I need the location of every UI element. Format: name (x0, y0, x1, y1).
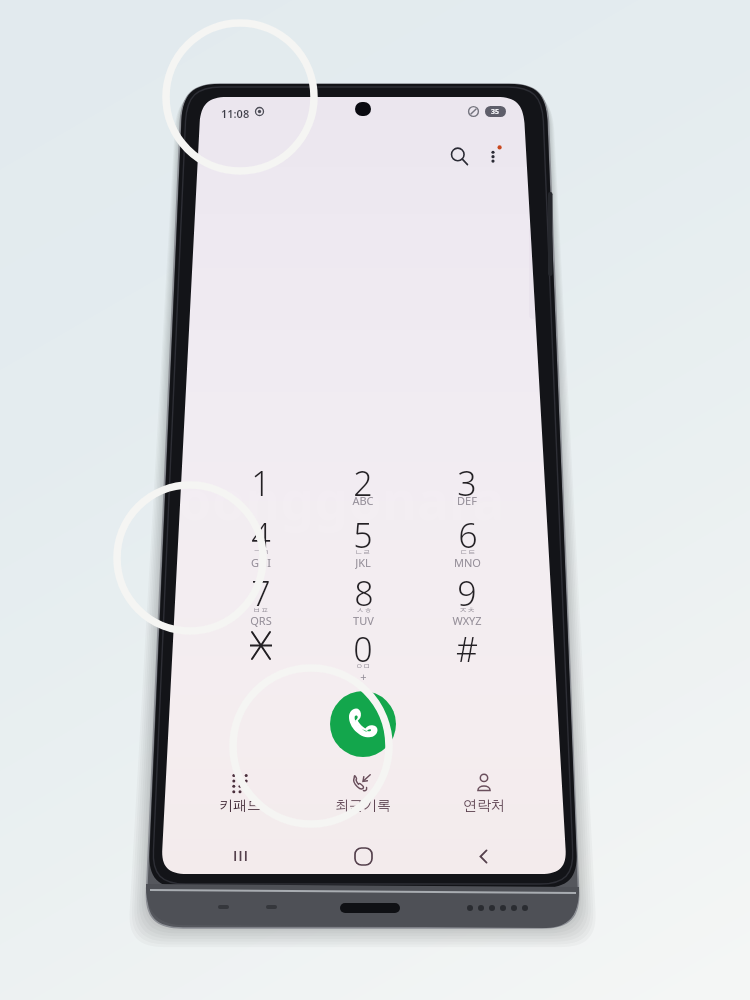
button[interactable]: Edge panel (529, 227, 537, 319)
button[interactable]: 6 (422, 512, 512, 582)
staticText: 8 (354, 570, 374, 616)
button[interactable]: 키패드 (192, 772, 288, 828)
button[interactable]: Search (441, 138, 477, 174)
staticText: 9 (457, 570, 477, 616)
button[interactable]: Home (345, 838, 381, 874)
staticText: 35 (491, 107, 500, 117)
staticText: GHI (251, 555, 271, 569)
button[interactable] (216, 626, 306, 696)
staticText: WXYZ (452, 613, 482, 627)
button[interactable]: 1 (216, 460, 306, 530)
staticText: ㄱㅋ (253, 547, 269, 557)
button[interactable]: 3 (422, 460, 512, 530)
button[interactable]: 9 (422, 570, 512, 640)
staticText: QRS (250, 613, 272, 627)
staticText: 4 (251, 512, 271, 558)
staticText: DEF (457, 493, 477, 508)
button[interactable]: 8 (318, 570, 408, 640)
button[interactable]: 2 (318, 460, 408, 530)
button[interactable]: 4 (216, 512, 306, 582)
staticText: 2 (353, 460, 373, 506)
staticText: joonggonara (162, 463, 505, 535)
staticText: ㄷㅌ (460, 547, 476, 557)
staticText: 5 (353, 512, 373, 558)
staticText: 6 (458, 512, 478, 558)
staticText: 0 (353, 626, 373, 672)
staticText: ㅂㅍ (253, 605, 269, 615)
staticText: TUV (353, 613, 374, 627)
button[interactable]: 연락처 (436, 772, 532, 828)
staticText: 1 (251, 460, 271, 506)
staticText: ABC (352, 493, 374, 508)
button[interactable]: 7 (216, 570, 306, 640)
button[interactable]: More options (475, 138, 511, 174)
staticText: 연락처 (463, 797, 505, 815)
button[interactable]: 0 (318, 626, 408, 696)
staticText: MNO (454, 555, 481, 569)
staticText: 최근기록 (335, 797, 391, 815)
staticText: ㅇㅁ (355, 661, 371, 671)
staticText: 7 (251, 570, 271, 616)
button[interactable]: Recents (222, 838, 258, 874)
staticText: JKL (355, 555, 371, 569)
staticText: 3 (457, 460, 477, 506)
staticText: ㅅㅎ (356, 605, 372, 615)
button[interactable]: 5 (318, 512, 408, 582)
staticText: ㄴㄹ (355, 547, 371, 557)
button[interactable]: 최근기록 (315, 772, 411, 828)
staticText: + (360, 669, 367, 683)
button[interactable]: # (422, 626, 512, 696)
staticText: # (456, 626, 478, 672)
staticText: 11:08 (221, 106, 250, 121)
button[interactable]: Back (465, 838, 501, 874)
staticText: ㅈㅊ (459, 605, 475, 615)
staticText: 키패드 (219, 797, 261, 815)
button[interactable]: Call (330, 691, 396, 757)
